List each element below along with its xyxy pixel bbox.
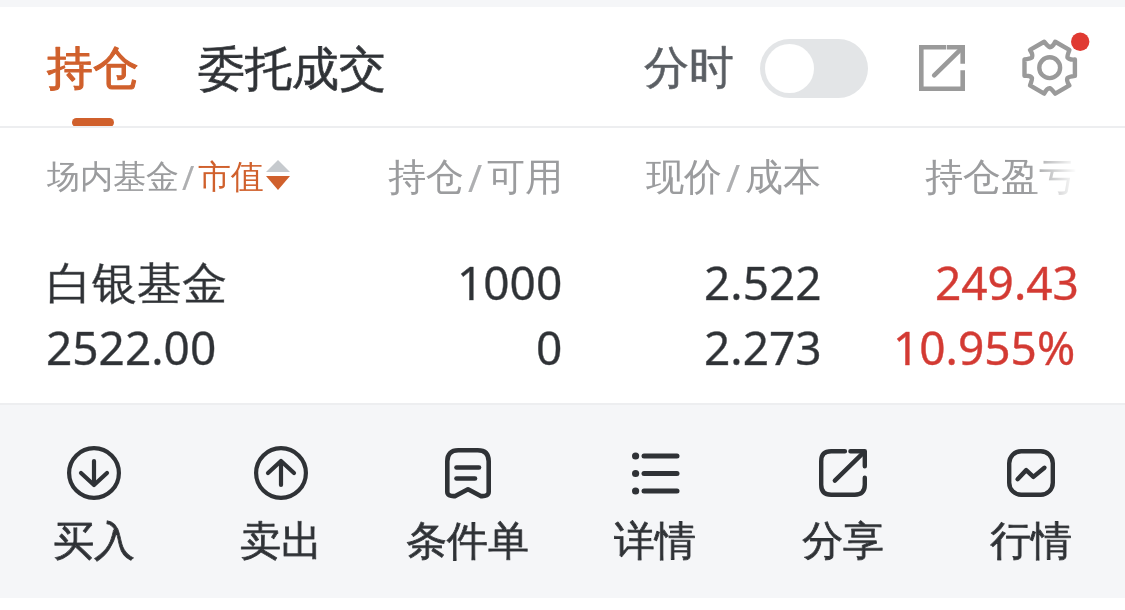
staticText: 行情: [990, 516, 1072, 566]
staticText: 2.273: [704, 316, 822, 376]
staticText: 买入: [53, 516, 135, 566]
staticText: 持仓: [388, 153, 464, 201]
staticText: 2522.00: [46, 316, 217, 376]
button[interactable]: 持仓: [24, 19, 161, 119]
staticText: 委托成交: [198, 40, 386, 99]
staticText: 条件单: [406, 516, 529, 566]
staticText: 0: [536, 316, 563, 376]
button[interactable]: 分享: [749, 405, 937, 598]
staticText: /: [468, 151, 483, 203]
button[interactable]: 白银基金: [0, 211, 1125, 403]
button[interactable]: 场内基金: [47, 146, 290, 208]
button[interactable]: 持仓: [333, 146, 563, 208]
staticText: 1000: [457, 251, 563, 311]
staticText: 市值: [198, 156, 264, 198]
staticText: 现价: [646, 153, 722, 201]
staticText: 详情: [614, 516, 696, 566]
staticText: 2.273: [704, 316, 822, 376]
staticText: 分享: [802, 516, 884, 566]
button[interactable]: 行情: [937, 405, 1125, 598]
button[interactable]: Settings: [1012, 30, 1090, 108]
button[interactable]: 分时: [644, 24, 868, 112]
staticText: 白银基金: [47, 256, 227, 313]
staticText: 白银基金: [47, 256, 227, 313]
staticText: /: [726, 151, 741, 203]
button[interactable]: 现价: [591, 146, 821, 208]
staticText: 10.955%: [893, 316, 1076, 376]
button[interactable]: 持仓盈亏: [871, 146, 1077, 208]
staticText: 分时: [644, 40, 734, 97]
button[interactable]: 买入: [0, 405, 187, 598]
staticText: 卖出: [240, 516, 322, 566]
staticText: 2.522: [704, 251, 822, 311]
staticText: 持仓: [47, 40, 139, 98]
staticText: 可用: [487, 153, 563, 201]
staticText: 卖出: [240, 516, 322, 566]
staticText: 0: [536, 316, 563, 376]
staticText: 2522.00: [46, 316, 217, 376]
button[interactable]: 条件单: [374, 405, 561, 598]
staticText: 委托成交: [198, 40, 386, 99]
staticText: /: [182, 155, 195, 200]
staticText: 持仓: [47, 40, 139, 98]
staticText: 249.43: [935, 251, 1079, 311]
button[interactable]: 委托成交: [175, 19, 408, 119]
staticText: 详情: [614, 516, 696, 566]
staticText: 249.43: [935, 251, 1079, 311]
staticText: 分时: [644, 40, 734, 97]
button[interactable]: 卖出: [187, 405, 374, 598]
staticText: 分享: [802, 516, 884, 566]
button[interactable]: Share: [906, 32, 978, 104]
staticText: 行情: [990, 516, 1072, 566]
staticText: 场内基金: [47, 156, 179, 198]
button[interactable]: 详情: [561, 405, 749, 598]
staticText: 1000: [457, 251, 563, 311]
staticText: 成本: [745, 153, 821, 201]
staticText: 持仓盈亏: [925, 153, 1077, 201]
staticText: 10.955%: [893, 316, 1076, 376]
staticText: 条件单: [406, 516, 529, 566]
staticText: 2.522: [704, 251, 822, 311]
staticText: 买入: [53, 516, 135, 566]
